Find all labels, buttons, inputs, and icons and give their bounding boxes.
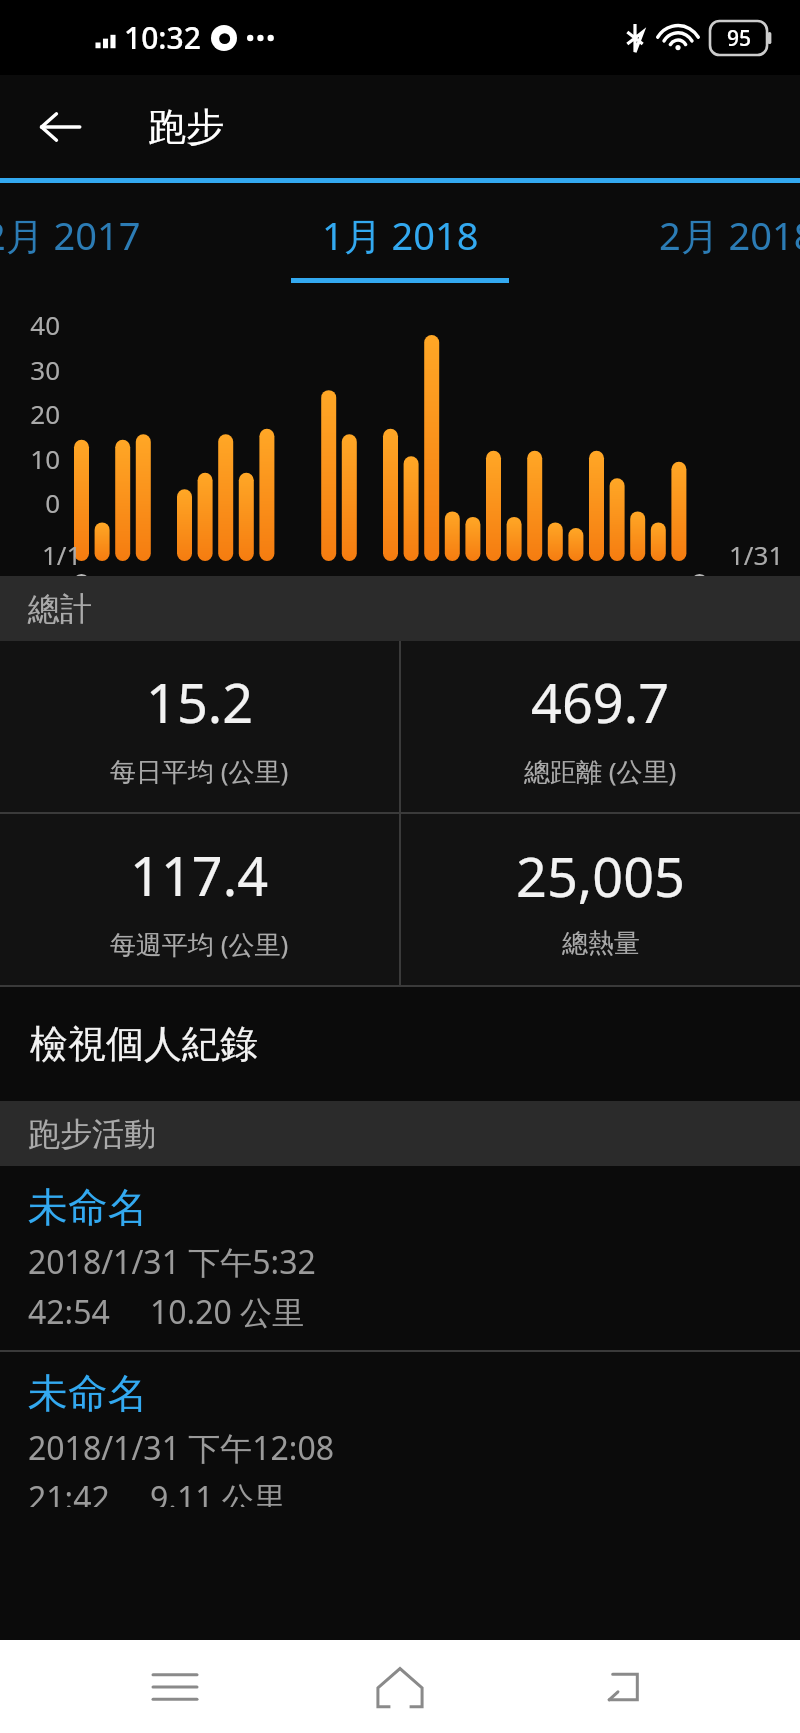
- staticText: 25,005: [516, 839, 685, 913]
- button[interactable]: 469.7: [401, 641, 800, 812]
- button[interactable]: 2月 2017: [0, 209, 141, 261]
- staticText: 總熱量: [562, 927, 640, 960]
- staticText: 95: [727, 24, 752, 53]
- staticText: 15.2: [146, 665, 254, 739]
- staticText: 10.20 公里: [150, 1290, 305, 1334]
- staticText: 2018/1/31 下午12:08: [28, 1426, 335, 1470]
- button[interactable]: 未命名: [0, 1166, 800, 1350]
- button[interactable]: 檢視個人紀錄: [0, 987, 800, 1101]
- button[interactable]: 25,005: [401, 814, 800, 985]
- staticText: 未命名: [28, 1182, 148, 1232]
- staticText: 總距離 (公里): [524, 753, 677, 789]
- staticText: 1/1: [42, 537, 82, 572]
- staticText: 未命名: [28, 1368, 148, 1418]
- button[interactable]: Back: [22, 89, 98, 165]
- staticText: 每日平均 (公里): [110, 753, 289, 789]
- staticText: 檢視個人紀錄: [30, 1020, 258, 1068]
- staticText: 10:32: [124, 17, 201, 58]
- staticText: 30: [14, 352, 60, 387]
- staticText: 1/31: [729, 537, 784, 572]
- staticText: 9.11 公里: [150, 1476, 286, 1507]
- staticText: 2018/1/31 下午5:32: [28, 1240, 316, 1284]
- staticText: 1月 2018: [322, 209, 479, 261]
- button[interactable]: 2月 2018: [659, 209, 800, 261]
- button[interactable]: 未命名: [0, 1352, 800, 1507]
- button[interactable]: Back: [575, 1640, 675, 1733]
- button[interactable]: Home: [350, 1640, 450, 1733]
- staticText: 每週平均 (公里): [110, 926, 289, 962]
- staticText: 10: [14, 441, 60, 476]
- staticText: 21:42: [28, 1476, 110, 1507]
- staticText: 跑步活動: [28, 1114, 156, 1154]
- staticText: 跑步: [148, 103, 224, 151]
- staticText: 總計: [28, 589, 92, 629]
- staticText: 117.4: [130, 838, 269, 912]
- button[interactable]: 1月 2018: [322, 183, 479, 261]
- button[interactable]: 15.2: [0, 641, 399, 812]
- staticText: 20: [14, 396, 60, 431]
- staticText: 469.7: [531, 665, 670, 739]
- button[interactable]: Recents: [125, 1640, 225, 1733]
- button[interactable]: 117.4: [0, 814, 399, 985]
- staticText: 40: [14, 307, 60, 342]
- staticText: 42:54: [28, 1290, 110, 1334]
- staticText: 0: [14, 485, 60, 520]
